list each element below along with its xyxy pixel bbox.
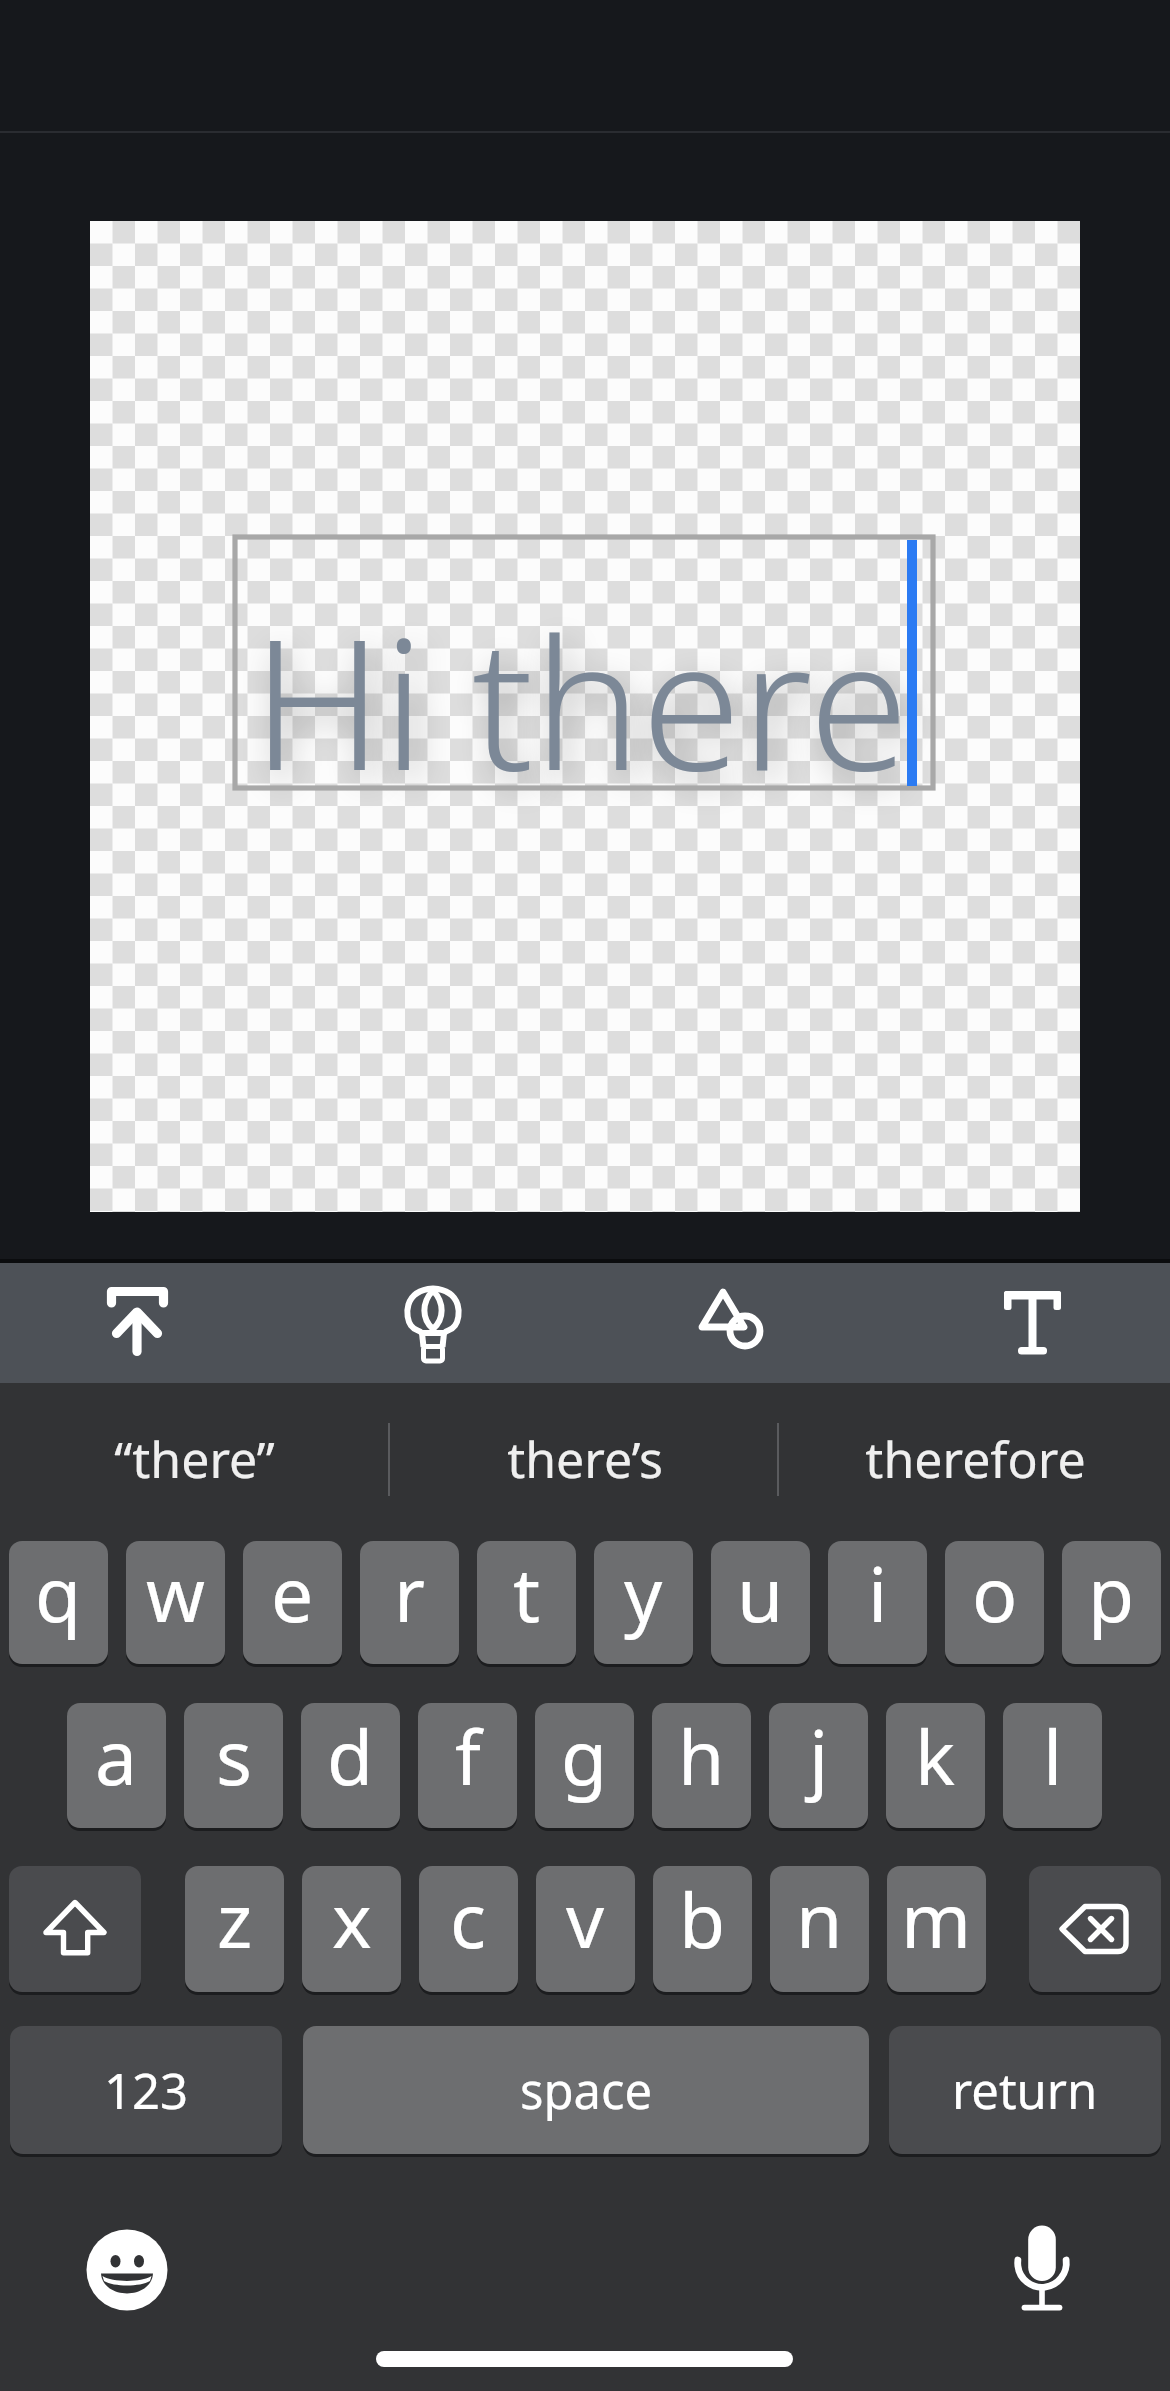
button[interactable]: space — [303, 2026, 869, 2154]
staticText: r — [394, 1542, 425, 1644]
button[interactable]: return — [889, 2026, 1161, 2154]
staticText: Hi there — [252, 577, 909, 824]
staticText: a — [95, 1705, 138, 1807]
staticText: o — [972, 1542, 1018, 1644]
staticText: c — [450, 1868, 487, 1970]
button[interactable]: z — [185, 1866, 284, 1992]
button[interactable]: w — [126, 1541, 225, 1664]
staticText: f — [455, 1705, 481, 1807]
button[interactable]: Dictation — [997, 2208, 1087, 2318]
staticText: y — [624, 1542, 663, 1644]
button[interactable]: 123 — [10, 2026, 282, 2154]
staticText: z — [217, 1868, 253, 1970]
button[interactable]: p — [1062, 1541, 1161, 1664]
staticText: g — [561, 1705, 608, 1807]
staticText: there’s — [507, 1425, 663, 1493]
staticText: x — [332, 1868, 372, 1970]
staticText: space — [520, 2057, 653, 2124]
button[interactable]: e — [243, 1541, 342, 1664]
staticText: b — [679, 1868, 726, 1970]
button[interactable]: a — [67, 1703, 166, 1828]
button[interactable]: Emoji keyboard — [86, 2229, 168, 2311]
button[interactable]: Backspace — [1029, 1866, 1161, 1992]
staticText: “there” — [114, 1425, 275, 1493]
button[interactable]: y — [594, 1541, 693, 1664]
button[interactable]: u — [711, 1541, 810, 1664]
button[interactable]: there’s — [391, 1383, 778, 1516]
button[interactable]: q — [9, 1541, 108, 1664]
staticText: 123 — [104, 2057, 189, 2124]
staticText: p — [1088, 1542, 1135, 1644]
button[interactable]: Stickers — [373, 1263, 493, 1383]
staticText: t — [513, 1542, 541, 1644]
button[interactable]: d — [301, 1703, 400, 1828]
button[interactable]: j — [769, 1703, 868, 1828]
button[interactable]: r — [360, 1541, 459, 1664]
button[interactable]: t — [477, 1541, 576, 1664]
button[interactable]: Import media — [77, 1263, 197, 1383]
button[interactable]: b — [653, 1866, 752, 1992]
staticText: v — [566, 1868, 605, 1970]
staticText: w — [146, 1542, 205, 1644]
button[interactable]: c — [419, 1866, 518, 1992]
staticText: d — [327, 1705, 374, 1807]
button[interactable]: v — [536, 1866, 635, 1992]
button[interactable]: g — [535, 1703, 634, 1828]
staticText: h — [678, 1705, 725, 1807]
staticText: k — [915, 1705, 956, 1807]
button[interactable]: s — [184, 1703, 283, 1828]
staticText: j — [809, 1705, 829, 1807]
button[interactable]: Shift — [9, 1866, 141, 1992]
staticText: return — [952, 2057, 1098, 2124]
staticText: u — [737, 1542, 784, 1644]
button[interactable]: Shapes — [670, 1263, 790, 1383]
button[interactable]: “there” — [0, 1383, 389, 1516]
staticText: l — [1043, 1705, 1063, 1807]
button[interactable]: i — [828, 1541, 927, 1664]
staticText: i — [868, 1542, 888, 1644]
staticText: q — [35, 1542, 82, 1644]
button[interactable]: Text — [972, 1263, 1092, 1383]
button[interactable]: h — [652, 1703, 751, 1828]
staticText: therefore — [865, 1425, 1086, 1493]
staticText: e — [271, 1542, 314, 1644]
button[interactable]: k — [886, 1703, 985, 1828]
button[interactable]: x — [302, 1866, 401, 1992]
button[interactable]: therefore — [780, 1383, 1170, 1516]
button[interactable]: n — [770, 1866, 869, 1992]
button[interactable]: o — [945, 1541, 1044, 1664]
staticText: n — [796, 1868, 843, 1970]
staticText: m — [901, 1868, 972, 1970]
button[interactable]: m — [887, 1866, 986, 1992]
button[interactable]: f — [418, 1703, 517, 1828]
staticText: s — [216, 1705, 252, 1807]
button[interactable]: l — [1003, 1703, 1102, 1828]
